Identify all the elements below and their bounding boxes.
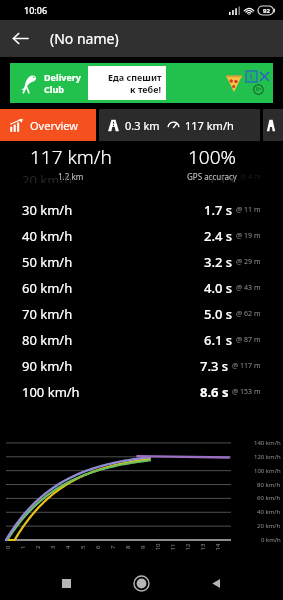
staticText: GPS accuracy <box>187 171 237 182</box>
staticText: 6.1 s <box>204 331 233 349</box>
staticText: 1.2 km <box>58 171 84 182</box>
staticText: 100 km/h <box>254 467 281 475</box>
staticText: 117 km/h <box>30 144 112 170</box>
staticText: 9 <box>139 545 147 549</box>
staticText: 4 <box>64 545 72 549</box>
button[interactable]: Close ad <box>259 71 270 82</box>
staticText: 117 km/h <box>185 118 234 133</box>
button[interactable]: 20 km/h <box>22 171 261 183</box>
staticText: 6 <box>94 545 102 549</box>
staticText: i <box>250 72 253 82</box>
staticText: Club <box>44 83 64 95</box>
staticText: 13 <box>198 543 206 550</box>
button[interactable]: Delivery <box>10 63 273 103</box>
staticText: 80 km/h <box>22 331 73 349</box>
staticText: 14 <box>213 543 221 550</box>
staticText: 0+ <box>256 86 262 93</box>
staticText: @ 4 m <box>240 172 261 182</box>
staticText: 2.4 s <box>204 227 233 245</box>
staticText: 3.2 s <box>204 253 233 271</box>
staticText: @ 43 m <box>236 283 261 293</box>
staticText: 0 km/h <box>261 536 281 544</box>
button[interactable]: Home <box>126 568 156 598</box>
staticText: 40 km/h <box>257 508 281 516</box>
staticText: 100% <box>188 144 236 170</box>
button[interactable]: Overview <box>0 109 96 141</box>
button[interactable]: Recent apps <box>51 568 81 598</box>
staticText: (No name) <box>50 29 119 48</box>
button[interactable]: More tabs <box>263 109 283 141</box>
staticText: 0 <box>4 545 12 549</box>
staticText: 1.1 s <box>208 171 237 183</box>
staticText: 3 <box>49 545 57 549</box>
staticText: 40 km/h <box>22 227 73 245</box>
staticText: Еда спешит <box>108 71 162 83</box>
button[interactable]: 40 km/h <box>22 223 261 249</box>
staticText: 30 km/h <box>22 201 73 219</box>
staticText: 1 <box>19 545 27 549</box>
staticText: @ 153 m <box>232 387 261 397</box>
staticText: 60 km/h <box>22 279 73 297</box>
button[interactable]: Back <box>0 20 40 57</box>
staticText: @ 19 m <box>236 231 261 241</box>
staticText: 20 km/h <box>22 171 73 183</box>
staticText: 5 <box>79 545 87 549</box>
staticText: @ 29 m <box>236 257 261 267</box>
button[interactable]: 30 km/h <box>22 197 261 223</box>
button[interactable]: 90 km/h <box>22 353 261 379</box>
staticText: 92 <box>263 7 270 15</box>
staticText: @ 87 m <box>236 335 261 345</box>
button[interactable]: Ad info <box>246 71 257 82</box>
staticText: 1.7 s <box>204 201 233 219</box>
button[interactable]: Back <box>201 568 231 598</box>
staticText: 2 <box>34 545 42 549</box>
staticText: 8 <box>124 545 132 549</box>
staticText: 120 km/h <box>254 453 281 461</box>
staticText: 80 km/h <box>257 481 281 489</box>
staticText: к тебе! <box>130 83 162 95</box>
button[interactable]: 0.3 km <box>99 109 260 141</box>
staticText: 11 <box>168 543 176 550</box>
staticText: 60 km/h <box>257 494 281 502</box>
staticText: Delivery <box>44 71 82 83</box>
staticText: 50 km/h <box>22 253 73 271</box>
staticText: 8.6 s <box>200 383 229 401</box>
staticText: @ 62 m <box>236 309 261 319</box>
staticText: 20 km/h <box>257 522 281 530</box>
button[interactable]: 100 km/h <box>22 379 261 405</box>
staticText: 4.0 s <box>204 279 233 297</box>
staticText: 12 <box>183 543 191 550</box>
staticText: 10:06 <box>24 4 48 16</box>
staticText: 0.3 km <box>125 118 160 133</box>
button[interactable]: 50 km/h <box>22 249 261 275</box>
button[interactable]: 60 km/h <box>22 275 261 301</box>
staticText: @ 11 m <box>236 205 261 215</box>
staticText: 90 km/h <box>22 357 73 375</box>
staticText: 5.0 s <box>204 305 233 323</box>
staticText: 7.3 s <box>200 357 229 375</box>
staticText: 70 km/h <box>22 305 73 323</box>
staticText: @ 117 m <box>232 361 261 371</box>
staticText: Overview <box>30 118 78 133</box>
staticText: 140 km/h <box>254 439 281 447</box>
staticText: 100 km/h <box>22 383 80 401</box>
staticText: 10 <box>153 543 161 550</box>
button[interactable]: 80 km/h <box>22 327 261 353</box>
button[interactable]: 70 km/h <box>22 301 261 327</box>
staticText: 7 <box>109 545 117 549</box>
